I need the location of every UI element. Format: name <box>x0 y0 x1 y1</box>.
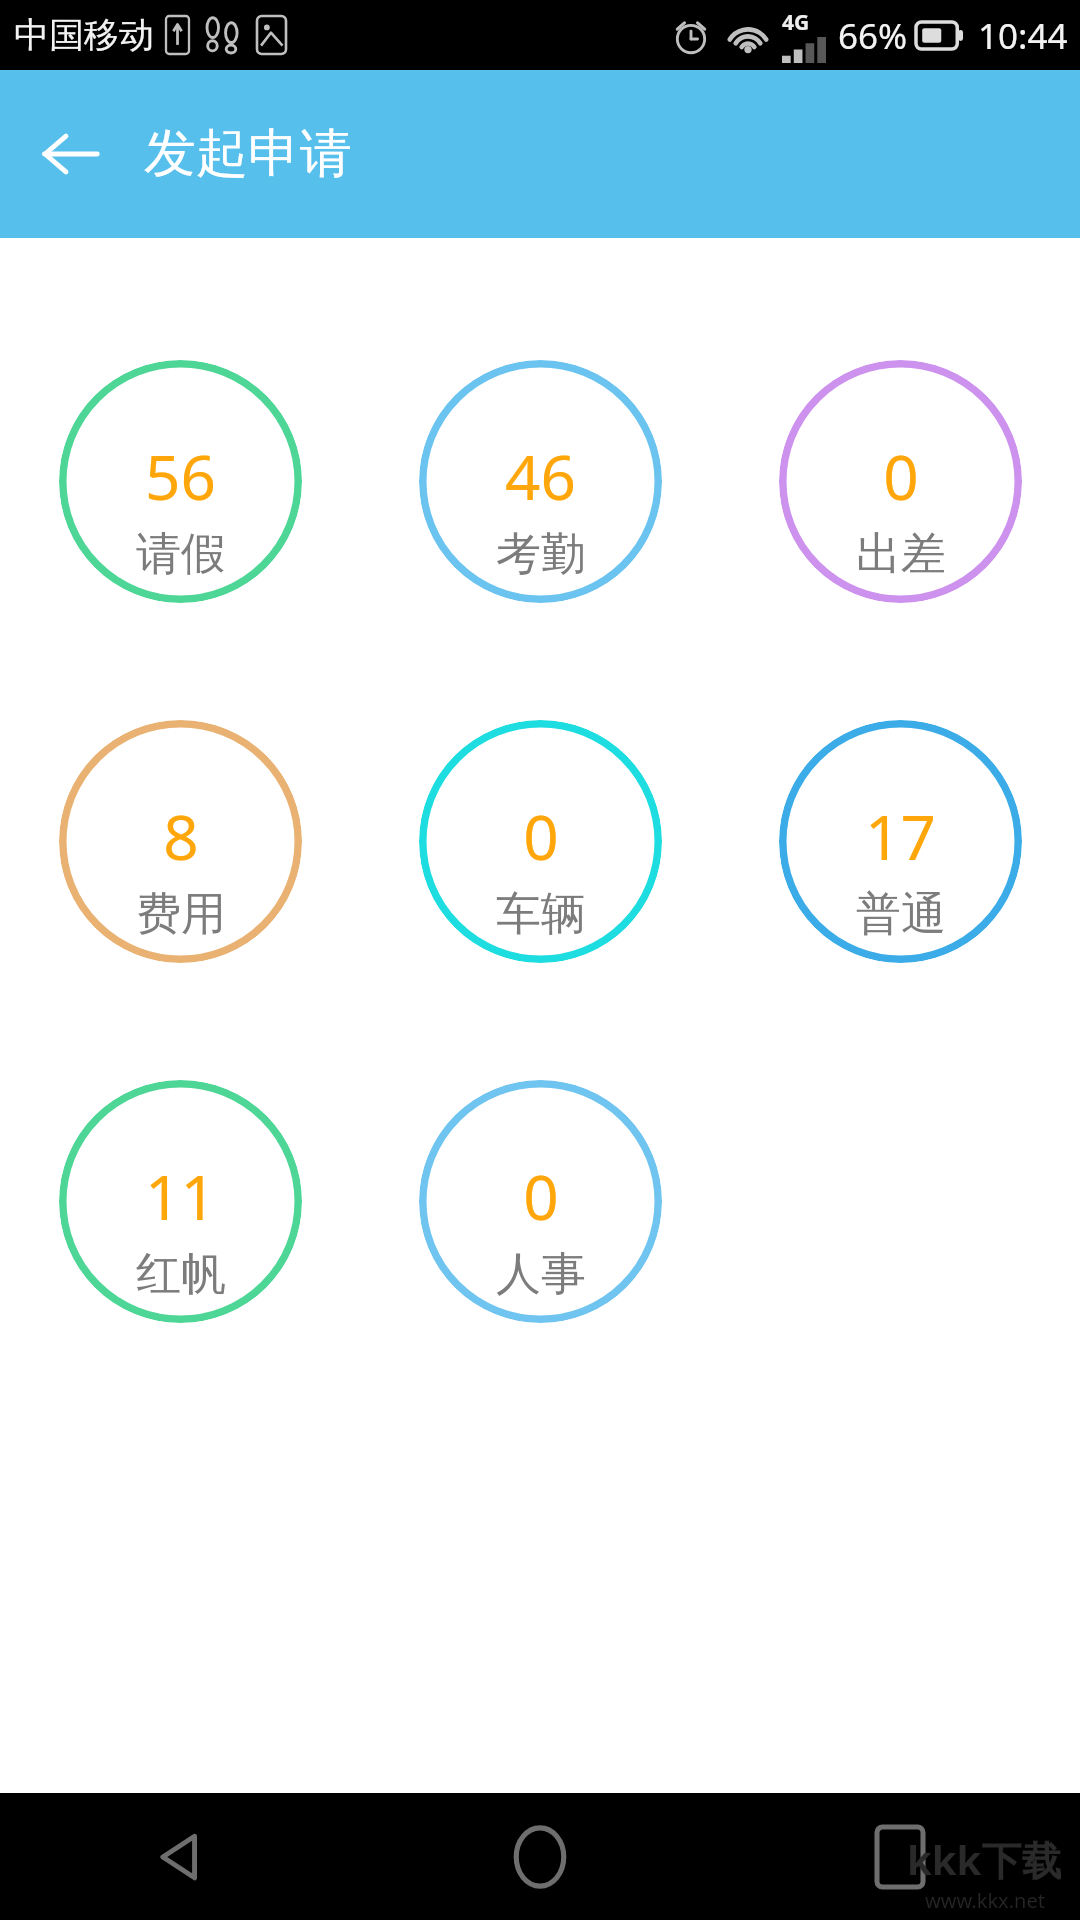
staticText: 红帆 <box>136 1246 226 1303</box>
staticText: 8 <box>163 794 199 878</box>
staticText: 考勤 <box>496 526 586 583</box>
button[interactable]: 返回 <box>22 106 118 202</box>
staticText: 车辆 <box>496 886 586 943</box>
staticText: 56 <box>145 434 216 518</box>
staticText: 请假 <box>136 526 226 583</box>
staticText: www.kkx.net <box>925 1887 1045 1914</box>
button[interactable]: 0 <box>779 360 1022 603</box>
button[interactable]: 最近任务 <box>720 1793 1080 1920</box>
staticText: 11 <box>145 1154 216 1238</box>
button[interactable]: 17 <box>779 720 1022 963</box>
button[interactable]: 56 <box>59 360 302 603</box>
button[interactable]: 返回 <box>0 1793 360 1920</box>
button[interactable]: 8 <box>59 720 302 963</box>
staticText: 46 <box>505 434 576 518</box>
staticText: 66% <box>838 12 908 60</box>
staticText: 0 <box>883 434 919 518</box>
staticText: 4G <box>782 8 810 37</box>
staticText: 人事 <box>496 1246 586 1303</box>
staticText: 发起申请 <box>144 121 352 187</box>
staticText: 10:44 <box>978 12 1068 60</box>
staticText: 费用 <box>136 886 226 943</box>
button[interactable]: 0 <box>419 720 662 963</box>
staticText: 0 <box>523 794 559 878</box>
staticText: 0 <box>523 1154 559 1238</box>
staticText: 普通 <box>856 886 946 943</box>
staticText: 17 <box>865 794 936 878</box>
button[interactable]: 11 <box>59 1080 302 1323</box>
button[interactable]: 46 <box>419 360 662 603</box>
staticText: kkk下载 <box>907 1832 1062 1887</box>
staticText: 中国移动 <box>14 13 154 57</box>
staticText: 出差 <box>856 526 946 583</box>
button[interactable]: 0 <box>419 1080 662 1323</box>
button[interactable]: 主页 <box>360 1793 720 1920</box>
